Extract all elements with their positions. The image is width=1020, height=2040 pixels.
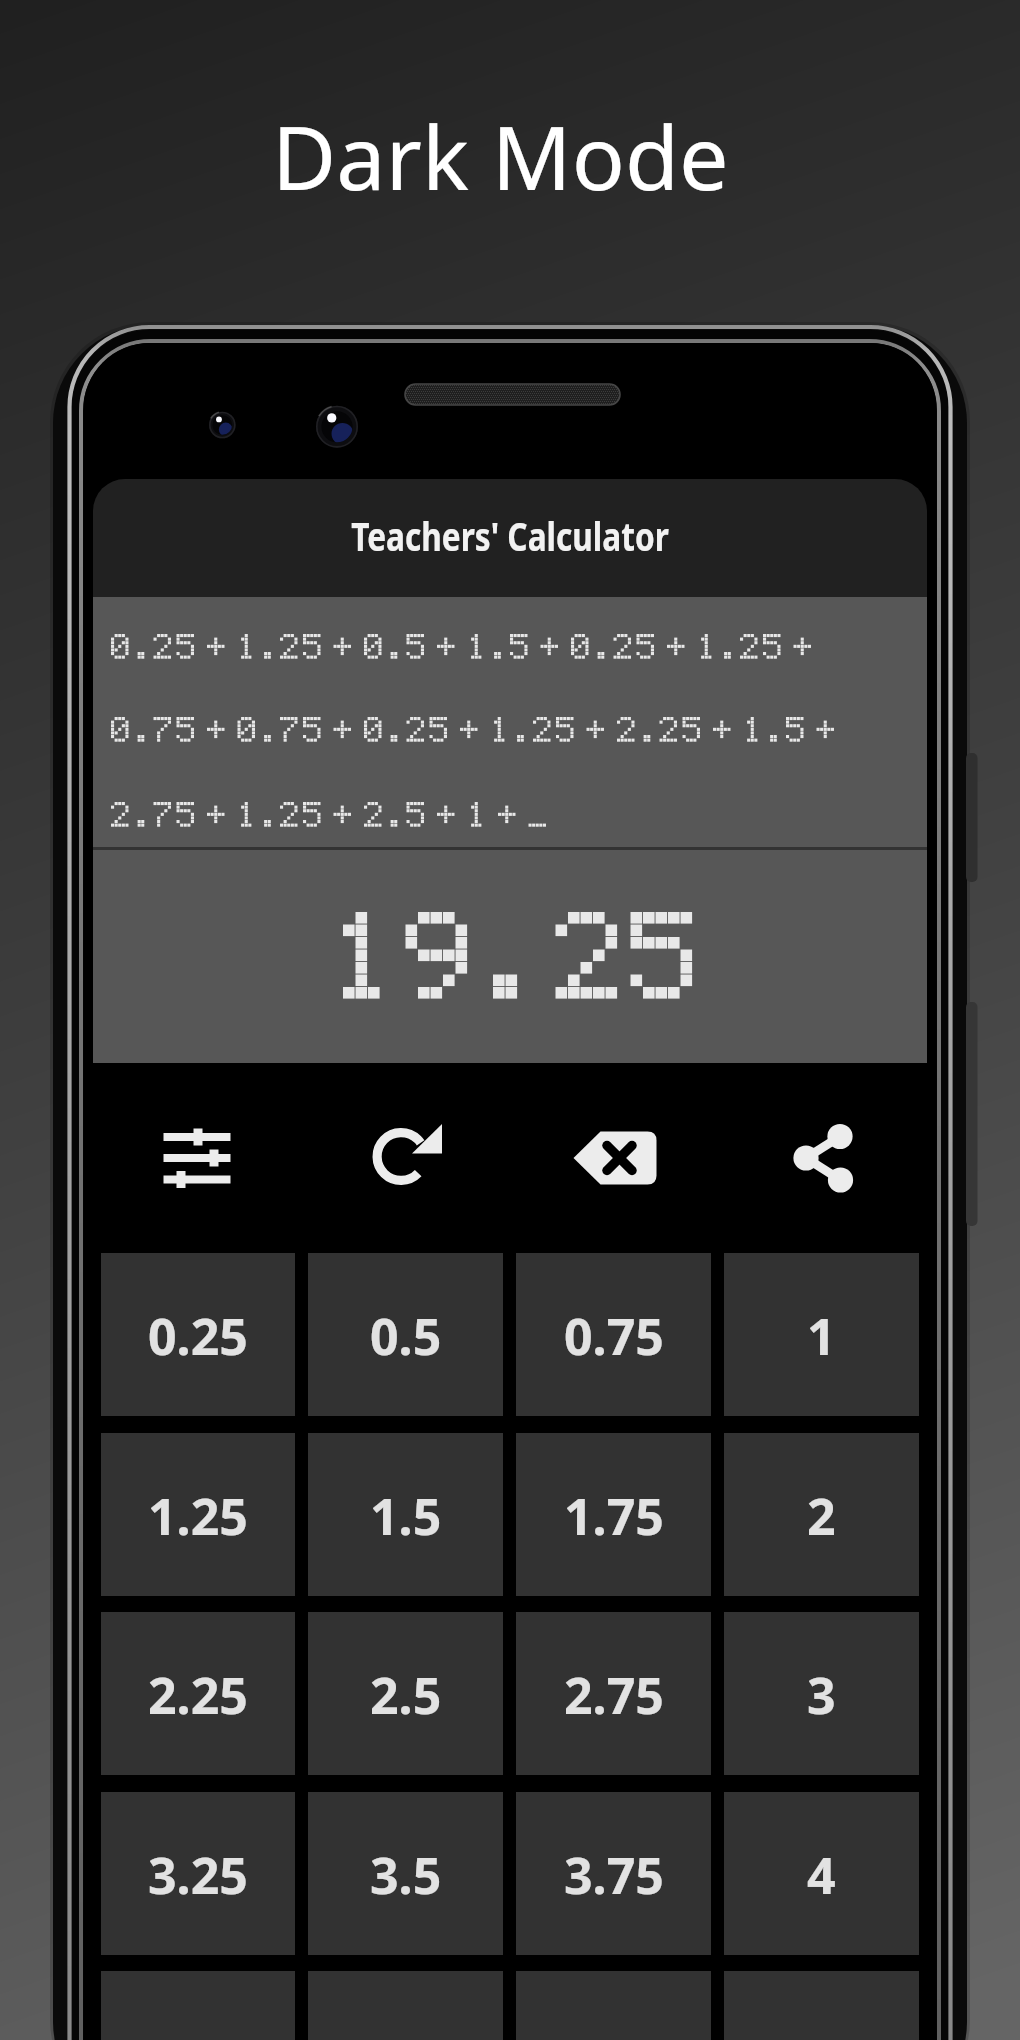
staticText: 1: [807, 1302, 836, 1370]
button[interactable]: 2.75: [516, 1612, 711, 1775]
staticText: 4: [807, 1841, 836, 1909]
button[interactable]: Settings: [93, 1063, 301, 1253]
staticText: 0.75: [564, 1302, 664, 1370]
button[interactable]: Teachers' Calculator: [93, 479, 927, 597]
button[interactable]: 0.5: [308, 1253, 503, 1416]
staticText: 3.5: [370, 1841, 442, 1909]
button[interactable]: 3.75: [516, 1792, 711, 1955]
staticText: 1.25: [148, 1482, 248, 1550]
button[interactable]: Backspace: [509, 1063, 718, 1253]
staticText: Teachers' Calculator: [351, 508, 669, 562]
button[interactable]: Share: [718, 1063, 927, 1253]
button[interactable]: 1: [724, 1253, 919, 1416]
staticText: 0.25: [148, 1302, 248, 1370]
button[interactable]: Redo: [301, 1063, 509, 1253]
button[interactable]: 2.25: [101, 1612, 295, 1775]
button[interactable]: 0.25: [101, 1253, 295, 1416]
staticText: 1.75: [564, 1482, 664, 1550]
staticText: 3.25: [148, 1841, 248, 1909]
button[interactable]: 0.75: [516, 1253, 711, 1416]
staticText: 2.5: [370, 1661, 442, 1729]
button[interactable]: 1.5: [308, 1433, 503, 1596]
staticText: 3.75: [564, 1841, 664, 1909]
button[interactable]: 3.5: [308, 1792, 503, 1955]
button[interactable]: 1.75: [516, 1433, 711, 1596]
button[interactable]: 3: [724, 1612, 919, 1775]
button[interactable]: 2: [724, 1433, 919, 1596]
staticText: 2: [807, 1482, 836, 1550]
button[interactable]: 4: [724, 1792, 919, 1955]
staticText: 3: [807, 1661, 836, 1729]
button[interactable]: 1.25: [101, 1433, 295, 1596]
staticText: 0.5: [370, 1302, 442, 1370]
staticText: 1.5: [370, 1482, 442, 1550]
staticText: Dark Mode: [272, 96, 729, 216]
button[interactable]: 3.25: [101, 1792, 295, 1955]
button[interactable]: 2.5: [308, 1612, 503, 1775]
staticText: 2.75: [564, 1661, 664, 1729]
staticText: 2.25: [148, 1661, 248, 1729]
